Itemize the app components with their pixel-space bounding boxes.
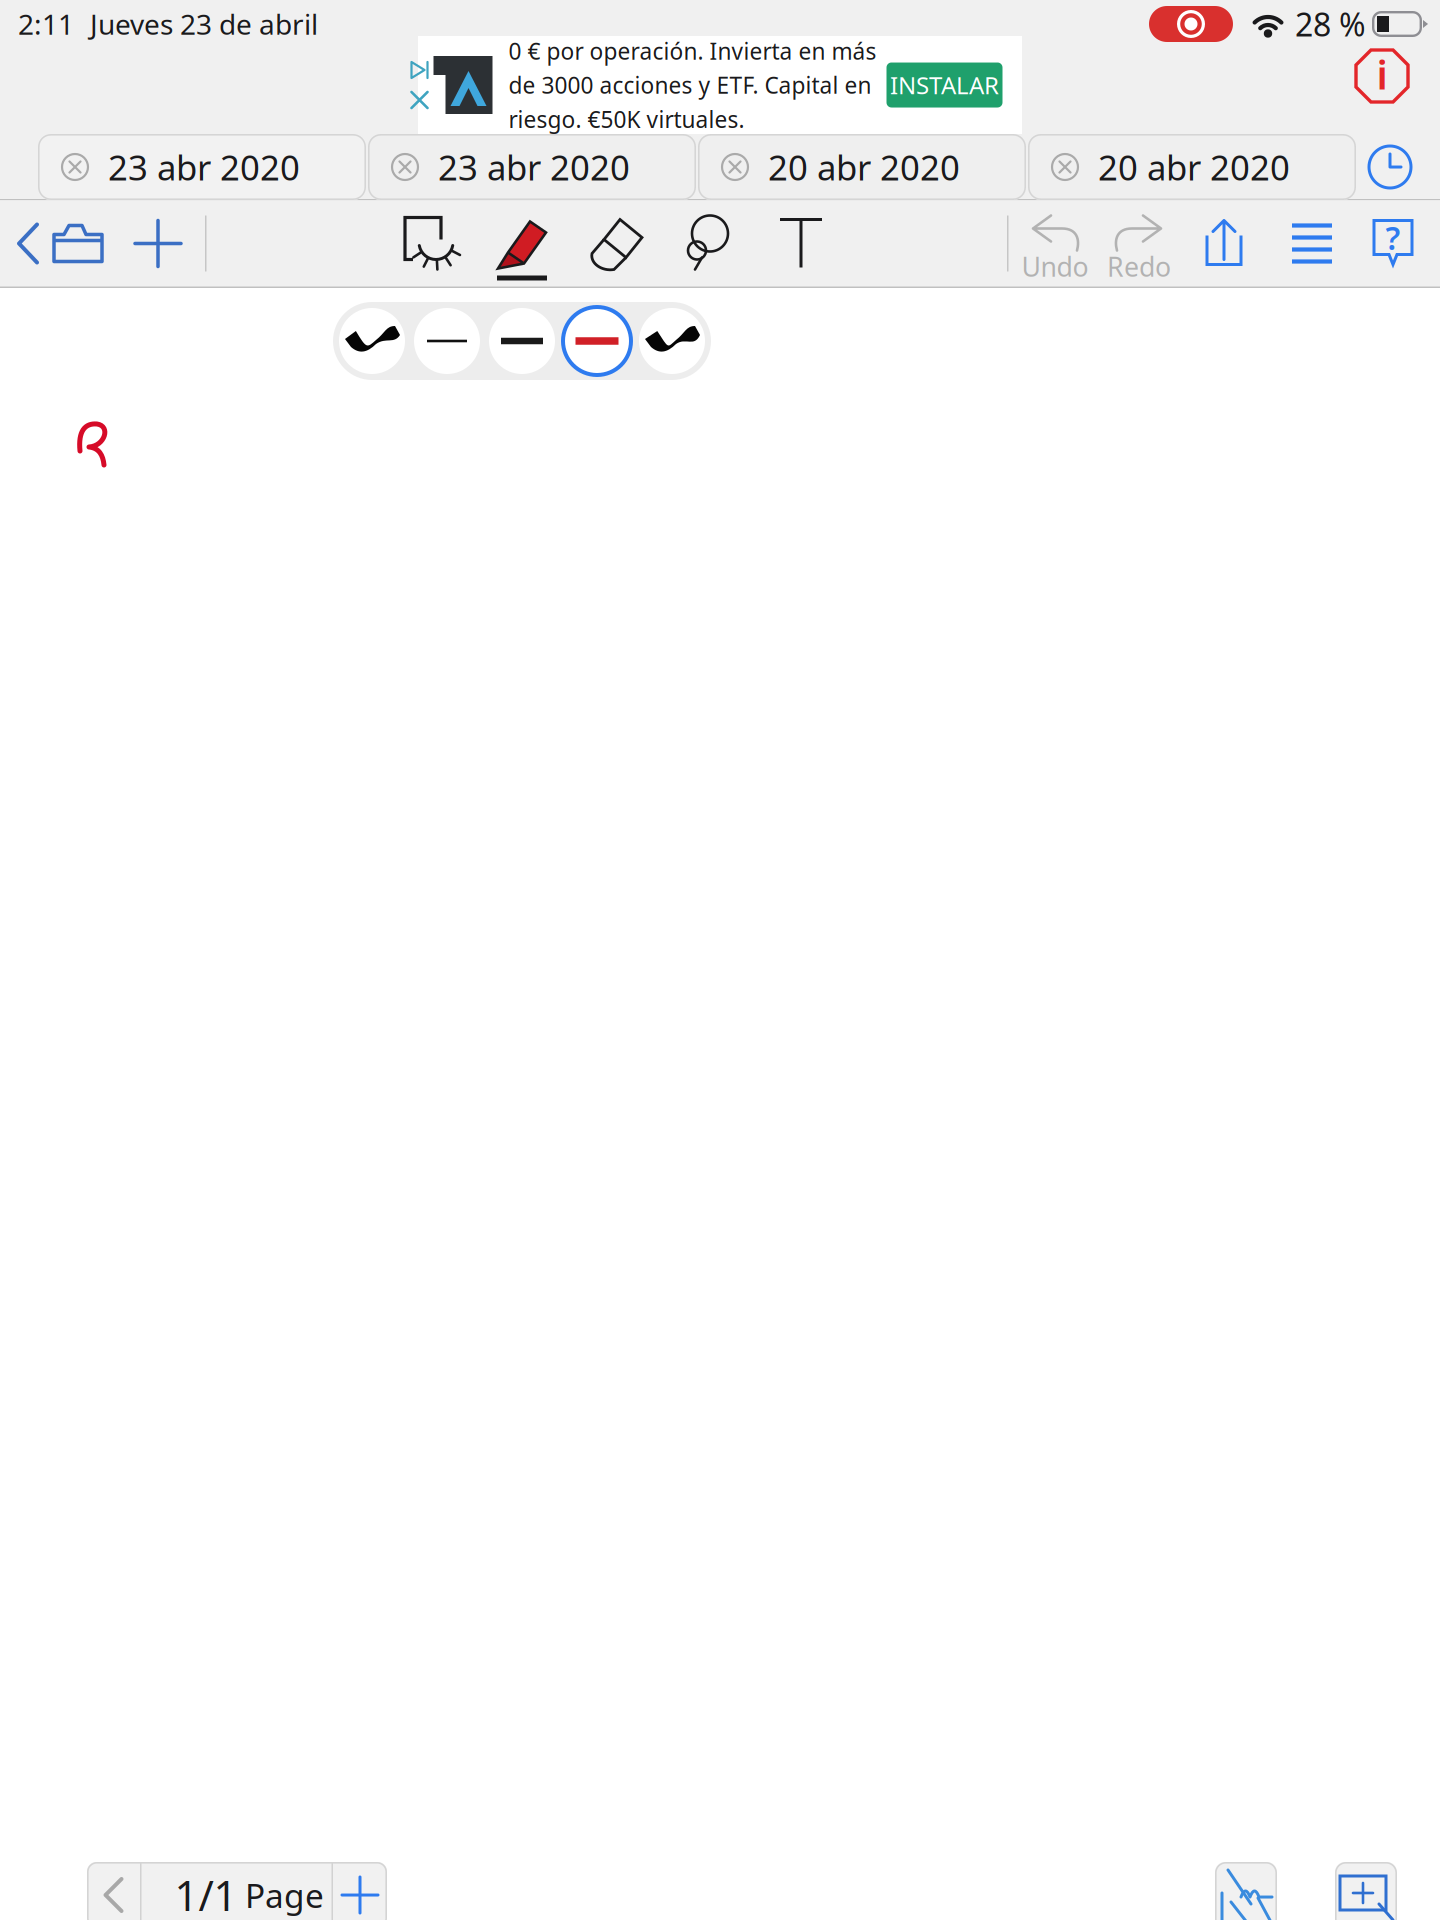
button[interactable]: Lasso [686, 214, 734, 270]
button[interactable]: Previous page [87, 1862, 140, 1920]
button[interactable]: Add page [333, 1862, 387, 1920]
staticText: i [1376, 47, 1387, 100]
staticText: 23 abr 2020 [108, 144, 300, 190]
button[interactable]: New document [134, 219, 182, 267]
button[interactable]: 20 abr 2020 [1028, 134, 1356, 200]
staticText: 23 abr 2020 [438, 144, 630, 190]
staticText: 2:11 [18, 5, 74, 43]
button[interactable]: Red pen, selected [561, 305, 633, 377]
staticText: Redo [1107, 249, 1171, 284]
button[interactable]: Zoom box [1335, 1862, 1397, 1920]
button[interactable]: Share [1202, 217, 1246, 269]
button[interactable]: Draw with finger [1215, 1862, 1277, 1920]
button[interactable]: Thin pen [411, 305, 483, 377]
staticText: ? [1385, 216, 1400, 259]
button[interactable]: Recent documents [1366, 143, 1414, 191]
button[interactable]: Hide annotations [403, 215, 459, 273]
staticText: INSTALAR [890, 69, 999, 101]
button[interactable]: Wide brush [636, 305, 708, 377]
button[interactable]: Documents [16, 221, 104, 265]
button[interactable]: 1/1 [141, 1862, 331, 1920]
button[interactable]: 23 abr 2020 [38, 134, 366, 200]
button[interactable]: Medium pen [486, 305, 558, 377]
button[interactable]: Eraser [588, 217, 646, 271]
button[interactable]: Menu [1290, 222, 1334, 264]
button[interactable]: Brush [336, 305, 408, 377]
button[interactable]: 20 abr 2020 [698, 134, 1026, 200]
staticText: 20 abr 2020 [1098, 144, 1290, 190]
button[interactable]: 23 abr 2020 [368, 134, 696, 200]
staticText: de 3000 acciones y ETF. Capital en [508, 70, 871, 100]
staticText: Undo [1021, 249, 1088, 284]
staticText: 1/1 [174, 1868, 237, 1920]
staticText: Page [245, 1873, 324, 1917]
staticText: 28 % [1295, 3, 1366, 45]
staticText: Jueves 23 de abril [90, 5, 318, 43]
button[interactable]: Pen [495, 218, 549, 280]
staticText: 20 abr 2020 [768, 144, 960, 190]
staticText: riesgo. €50K virtuales. [508, 104, 744, 134]
button[interactable]: Help [1371, 217, 1415, 267]
button[interactable]: Undo [1016, 212, 1094, 280]
button[interactable]: Redo [1100, 212, 1178, 280]
button[interactable]: 0 € por operación. Invierta en más [418, 36, 1022, 134]
button[interactable]: Information [1354, 48, 1410, 104]
staticText: 0 € por operación. Invierta en más [508, 36, 876, 66]
button[interactable]: Text [778, 217, 824, 269]
